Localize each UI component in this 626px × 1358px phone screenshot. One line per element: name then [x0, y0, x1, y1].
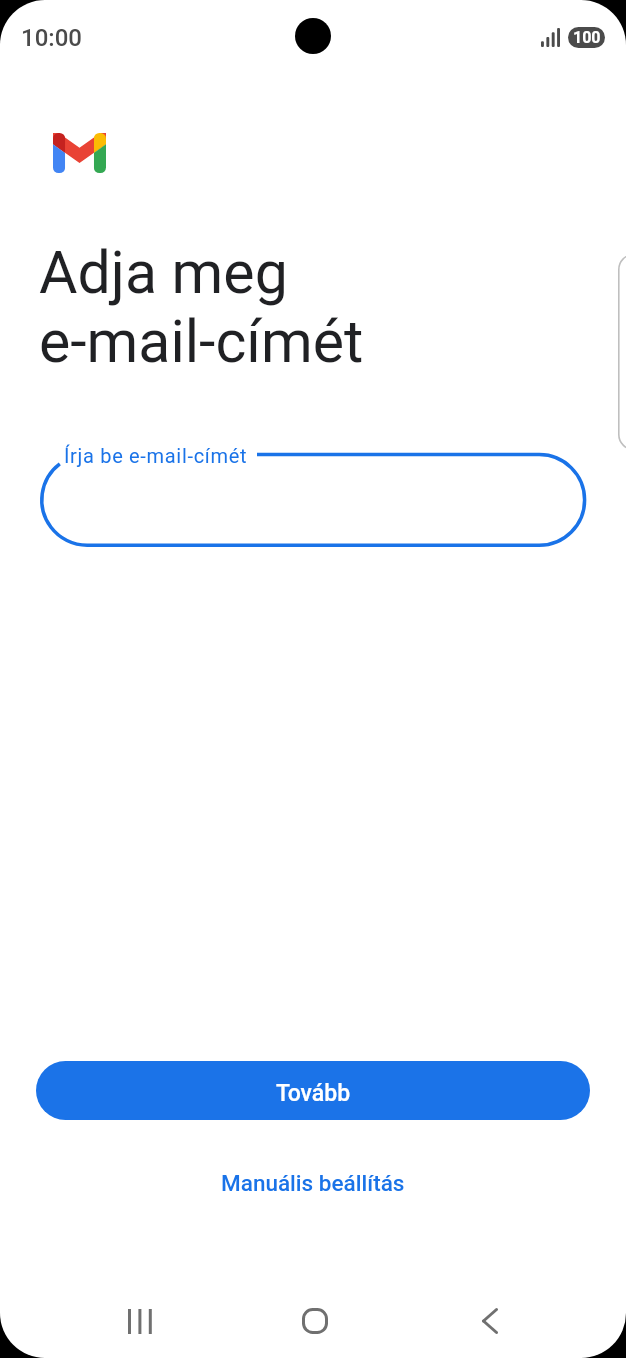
staticText: Adja meg e-mail-címét — [39, 238, 364, 376]
staticText: Manuális beállítás — [221, 1170, 405, 1196]
staticText: Tovább — [276, 1080, 351, 1107]
staticText: Írja be e-mail-címét — [64, 444, 248, 467]
button[interactable]: Home — [283, 1289, 347, 1353]
button[interactable]: Manuális beállítás — [0, 1160, 626, 1206]
button[interactable]: Recent apps — [108, 1289, 172, 1353]
staticText: 10:00 — [21, 24, 82, 52]
button[interactable]: Írja be e-mail-címét — [40, 453, 587, 547]
staticText: 100 — [573, 28, 601, 47]
button[interactable]: Back — [458, 1289, 522, 1353]
button[interactable]: Tovább — [36, 1061, 590, 1120]
